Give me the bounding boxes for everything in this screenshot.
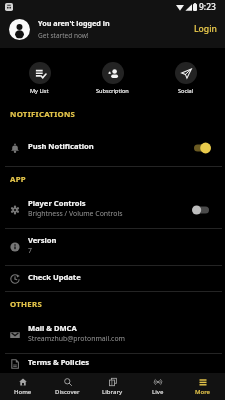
button[interactable]: Home [0,373,45,400]
button[interactable]: Check Update [0,266,225,291]
button[interactable]: Push notification toggle [194,142,211,154]
staticText: My List [30,87,49,95]
staticText: Login [194,23,217,35]
button[interactable]: Social [149,48,222,97]
button[interactable]: Login [188,18,219,40]
button[interactable]: Discover [45,373,90,400]
staticText: Streamzhub@protonmail.com [28,334,126,343]
button[interactable]: You aren't logged in [0,14,225,48]
button[interactable]: Subscription [76,48,149,97]
staticText: NOTIFICATIONS [10,109,76,120]
button[interactable]: Mail & DMCA [0,317,225,353]
staticText: Discover [55,388,80,396]
staticText: More [195,388,211,396]
staticText: You aren't logged in [38,18,110,28]
staticText: Terms & Policies [28,357,90,367]
staticText: Subscription [96,87,129,95]
staticText: Brightness / Volume Controls [28,209,123,218]
staticText: Version [28,235,57,245]
staticText: Library [102,388,123,396]
staticText: Live [152,388,164,396]
staticText: Get started now! [38,31,89,40]
staticText: 7 [28,246,32,255]
button[interactable]: Library [90,373,135,400]
button[interactable]: Push Notification [0,130,225,166]
button[interactable]: More [180,373,225,400]
staticText: 9:23 [199,1,216,13]
staticText: Social [178,87,194,95]
button[interactable]: My List [3,48,76,97]
button[interactable]: Player controls toggle [192,204,209,216]
button[interactable]: Player Controls [0,192,225,228]
staticText: Home [14,388,32,396]
button[interactable]: Terms & Policies [0,354,225,373]
staticText: Mail & DMCA [28,323,77,333]
button[interactable]: Live [135,373,180,400]
staticText: APP [10,174,26,185]
staticText: Check Update [28,272,81,282]
staticText: Player Controls [28,198,86,208]
button[interactable]: Version [0,229,225,265]
staticText: Push Notification [28,141,94,151]
staticText: OTHERS [10,299,42,310]
